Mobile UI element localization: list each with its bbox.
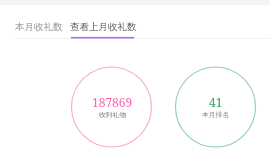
staticText: 收到礼物 [99, 110, 127, 119]
button[interactable]: 查看上月收礼数 [70, 18, 137, 36]
button[interactable]: 41 [176, 67, 256, 147]
button[interactable]: 187869 [72, 67, 152, 147]
staticText: 本月排名 [202, 110, 230, 119]
button[interactable]: 本月收礼数 [15, 18, 63, 36]
staticText: 41 [209, 94, 223, 110]
staticText: 查看上月收礼数 [70, 21, 137, 33]
staticText: 本月收礼数 [15, 21, 63, 33]
staticText: 187869 [92, 94, 133, 110]
